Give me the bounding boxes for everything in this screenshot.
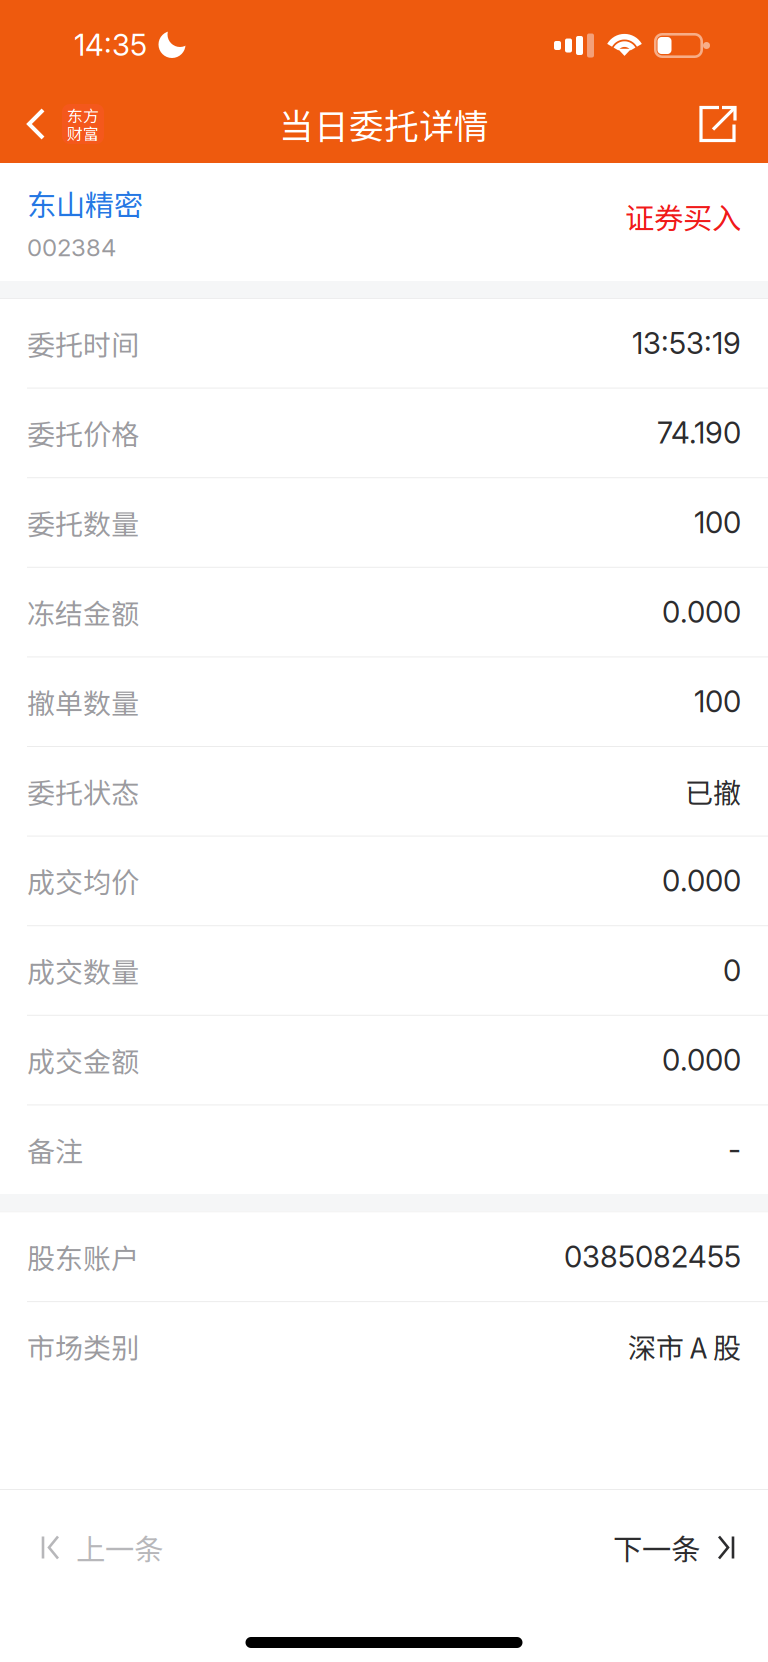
button[interactable]: 下一条 <box>585 1490 768 1605</box>
staticText: 74.190 <box>657 415 741 451</box>
staticText: 委托状态 <box>27 771 139 811</box>
staticText: 0.000 <box>662 594 741 630</box>
staticText: 上一条 <box>76 1526 163 1569</box>
staticText: 14:35 <box>74 27 147 63</box>
staticText: 市场类别 <box>27 1326 139 1367</box>
staticText: 深市 A 股 <box>628 1326 741 1367</box>
button[interactable]: Share <box>678 85 768 163</box>
staticText: 冻结金额 <box>27 592 139 632</box>
staticText: 0.000 <box>662 1042 741 1078</box>
staticText: 0.000 <box>662 863 741 899</box>
button[interactable]: 上一条 <box>0 1490 204 1605</box>
staticText: 委托价格 <box>27 413 139 453</box>
staticText: 东山精密 <box>27 182 143 224</box>
staticText: 证券买入 <box>625 195 741 237</box>
staticText: 撤单数量 <box>27 681 139 722</box>
staticText: 股东账户 <box>27 1236 139 1277</box>
staticText: 成交均价 <box>27 861 139 901</box>
staticText: 0385082455 <box>564 1239 741 1275</box>
staticText: 成交数量 <box>27 950 139 991</box>
staticText: - <box>728 1132 741 1167</box>
staticText: 备注 <box>27 1129 83 1170</box>
staticText: 13:53:19 <box>632 326 741 361</box>
button[interactable]: Back <box>0 85 117 163</box>
staticText: 002384 <box>27 233 116 262</box>
staticText: 已撤 <box>685 771 741 811</box>
staticText: 东方 <box>67 103 99 127</box>
staticText: 0 <box>723 953 741 988</box>
staticText: 当日委托详情 <box>279 99 489 149</box>
staticText: 委托时间 <box>27 323 139 363</box>
staticText: 成交金额 <box>27 1040 139 1080</box>
staticText: 委托数量 <box>27 502 139 543</box>
staticText: 100 <box>694 684 741 719</box>
staticText: 财富 <box>67 121 99 145</box>
staticText: 下一条 <box>613 1526 700 1569</box>
staticText: 100 <box>694 505 741 540</box>
